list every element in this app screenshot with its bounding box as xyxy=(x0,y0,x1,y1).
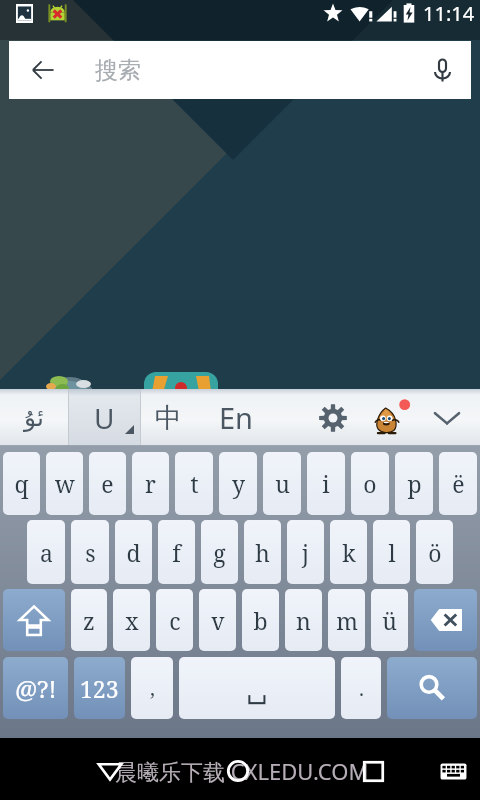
button[interactable]: j xyxy=(287,520,324,584)
staticText: . xyxy=(359,675,364,702)
staticText: h xyxy=(255,537,270,568)
button[interactable]: x xyxy=(113,589,150,651)
button[interactable]: k xyxy=(330,520,367,584)
button[interactable]: p xyxy=(395,452,433,515)
staticText: q xyxy=(14,468,29,499)
staticText: d xyxy=(126,537,141,568)
staticText: , xyxy=(150,675,155,702)
staticText: e xyxy=(101,468,114,499)
staticText: g xyxy=(213,537,226,568)
button[interactable]: w xyxy=(46,452,83,515)
button[interactable]: t xyxy=(175,452,213,515)
staticText: k xyxy=(342,537,356,568)
button[interactable]: Switch keyboard xyxy=(433,751,473,791)
staticText: 晨曦乐下载 CXLEDU.COM xyxy=(115,756,369,786)
staticText: a xyxy=(40,537,53,568)
button[interactable]: v xyxy=(199,589,236,651)
button[interactable]: Shift xyxy=(3,589,65,651)
button[interactable]: Backspace xyxy=(414,589,477,651)
staticText: ö xyxy=(428,537,442,568)
button[interactable]: Home xyxy=(215,748,261,794)
staticText: w xyxy=(55,468,75,499)
button[interactable]: ü xyxy=(371,589,408,651)
button[interactable]: b xyxy=(242,589,279,651)
staticText: f xyxy=(172,537,181,568)
staticText: r xyxy=(145,468,156,499)
button[interactable]: @?! xyxy=(3,657,68,719)
staticText: b xyxy=(253,605,268,636)
button[interactable]: ë xyxy=(439,452,477,515)
button[interactable]: r xyxy=(132,452,169,515)
staticText: v xyxy=(211,605,225,636)
staticText: t xyxy=(190,468,199,499)
staticText: ë xyxy=(452,468,465,499)
staticText: U xyxy=(94,399,115,437)
button[interactable]: ö xyxy=(416,520,453,584)
button[interactable]: q xyxy=(3,452,40,515)
staticText: ئۇ xyxy=(24,403,44,432)
staticText: o xyxy=(363,468,377,499)
staticText: 搜索 xyxy=(95,56,141,85)
button[interactable]: c xyxy=(156,589,193,651)
button[interactable]: 123 xyxy=(74,657,125,719)
staticText: En xyxy=(219,398,254,437)
staticText: ␣ xyxy=(246,672,268,705)
button[interactable]: Voice search xyxy=(413,41,471,99)
staticText: j xyxy=(302,537,309,568)
button[interactable]: Assistant xyxy=(361,389,419,446)
button[interactable]: a xyxy=(27,520,65,584)
staticText: x xyxy=(125,605,139,636)
button[interactable]: s xyxy=(71,520,109,584)
button[interactable]: En xyxy=(195,389,277,446)
staticText: u xyxy=(275,468,290,499)
button[interactable]: f xyxy=(158,520,195,584)
staticText: i xyxy=(322,468,330,499)
button[interactable]: . xyxy=(341,657,381,719)
button[interactable]: g xyxy=(201,520,238,584)
staticText: n xyxy=(296,605,311,636)
button[interactable]: Back xyxy=(9,41,76,99)
button[interactable]: Hide keyboard xyxy=(419,389,475,446)
staticText: y xyxy=(232,468,245,499)
button[interactable]: 中 xyxy=(141,389,195,446)
button[interactable]: Back xyxy=(87,748,133,794)
button[interactable]: z xyxy=(71,589,107,651)
button[interactable]: Recents xyxy=(350,748,396,794)
button[interactable]: u xyxy=(263,452,301,515)
staticText: 11:14 xyxy=(423,0,475,26)
button[interactable]: d xyxy=(115,520,152,584)
staticText: 中 xyxy=(155,401,182,435)
staticText: l xyxy=(388,537,396,568)
button[interactable]: , xyxy=(131,657,173,719)
staticText: p xyxy=(407,468,422,499)
staticText: 123 xyxy=(80,673,119,704)
button[interactable]: y xyxy=(219,452,257,515)
button[interactable]: Search xyxy=(387,657,477,719)
staticText: c xyxy=(169,605,181,636)
button[interactable]: e xyxy=(89,452,126,515)
button[interactable]: ␣ xyxy=(179,657,335,719)
button[interactable]: i xyxy=(307,452,345,515)
button[interactable]: o xyxy=(351,452,389,515)
staticText: ü xyxy=(382,605,397,636)
button[interactable]: m xyxy=(328,589,365,651)
button[interactable]: ئۇ xyxy=(0,389,68,446)
staticText: m xyxy=(336,605,358,636)
button[interactable]: l xyxy=(373,520,410,584)
button[interactable]: Settings xyxy=(305,389,361,446)
staticText: @?! xyxy=(15,672,57,705)
button[interactable]: U xyxy=(69,389,140,446)
staticText: s xyxy=(85,537,96,568)
button[interactable]: h xyxy=(244,520,281,584)
staticText: z xyxy=(83,605,95,636)
button[interactable]: n xyxy=(285,589,322,651)
